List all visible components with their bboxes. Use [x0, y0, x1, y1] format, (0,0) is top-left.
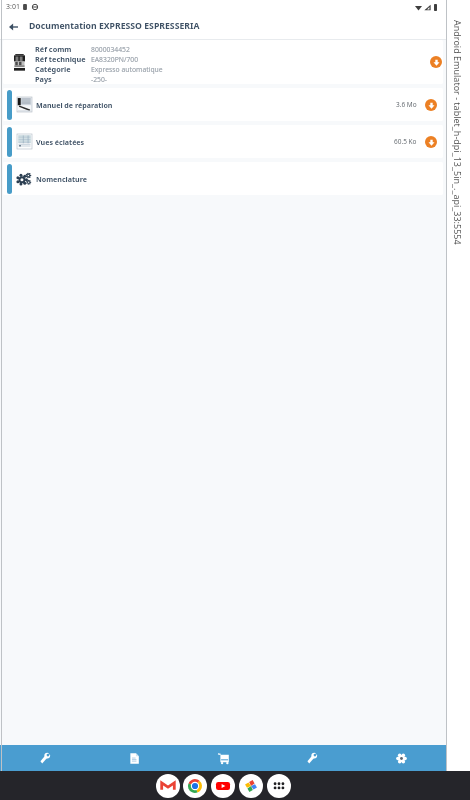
- staticText: 8000034452: [91, 45, 130, 54]
- button[interactable]: App: [183, 774, 207, 798]
- button[interactable]: Download: [430, 56, 442, 68]
- button[interactable]: Cart: [179, 745, 268, 771]
- staticText: Nomenclature: [36, 174, 87, 184]
- button[interactable]: Tools: [0, 745, 90, 771]
- staticText: Vues éclatées: [36, 137, 85, 147]
- staticText: EA8320PN/700: [91, 55, 139, 64]
- button[interactable]: Manuel de réparation: [3, 88, 443, 121]
- button[interactable]: App: [239, 774, 263, 798]
- staticText: 3.6 Mo: [396, 100, 417, 109]
- staticText: Android Emulator - tablet_h-dpi_13_5in_.…: [452, 20, 464, 245]
- button[interactable]: Back: [0, 14, 26, 40]
- button[interactable]: Download: [425, 99, 437, 111]
- staticText: -250-: [91, 75, 108, 84]
- button[interactable]: Réf comm: [3, 40, 443, 84]
- staticText: Réf comm: [35, 44, 72, 54]
- button[interactable]: Nomenclature: [3, 162, 443, 195]
- button[interactable]: Vues éclatées: [3, 125, 443, 158]
- button[interactable]: App: [156, 774, 180, 798]
- staticText: Pays: [35, 74, 52, 84]
- staticText: Manuel de réparation: [36, 100, 113, 110]
- button[interactable]: Repair: [268, 745, 357, 771]
- staticText: Catégorie: [35, 64, 71, 74]
- staticText: 3:01: [6, 2, 20, 12]
- staticText: 60.5 Ko: [394, 137, 417, 146]
- button[interactable]: App: [267, 774, 291, 798]
- button[interactable]: Documents: [90, 745, 179, 771]
- button[interactable]: Download: [425, 136, 437, 148]
- button[interactable]: App: [211, 774, 235, 798]
- staticText: Expresso automatique: [91, 65, 163, 74]
- staticText: Documentation EXPRESSO ESPRESSERIA: [29, 20, 200, 32]
- staticText: Réf technique: [35, 54, 86, 64]
- button[interactable]: Settings: [357, 745, 446, 771]
